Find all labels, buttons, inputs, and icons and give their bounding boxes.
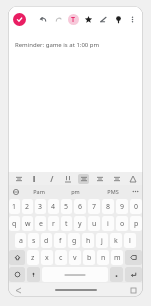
button[interactable]: 1 [9, 199, 20, 214]
button[interactable]: o [116, 216, 128, 231]
button[interactable]: Pin [113, 14, 124, 25]
staticText: 1 [12, 202, 17, 212]
staticText: s [32, 236, 36, 246]
button[interactable]: n [97, 250, 109, 265]
button[interactable]: Shift [9, 250, 25, 265]
staticText: 6 [78, 202, 83, 212]
button[interactable]: Format 7 [127, 174, 138, 184]
button[interactable]: d [41, 233, 52, 248]
button[interactable]: Format 2 [46, 174, 57, 184]
staticText: 5 [64, 202, 69, 212]
button[interactable]: Keyboard settings [11, 187, 20, 196]
button[interactable]: c [55, 250, 67, 265]
button[interactable]: 4 [48, 199, 59, 214]
button[interactable]: Format 0 [13, 174, 24, 184]
staticText: 3 [38, 202, 43, 212]
button[interactable]: b [83, 250, 95, 265]
button[interactable]: a [15, 233, 26, 248]
button[interactable]: 2 [22, 199, 33, 214]
button[interactable]: 6 [74, 199, 86, 214]
staticText: n [101, 253, 106, 263]
staticText: u [92, 219, 97, 229]
staticText: 0 [134, 202, 139, 212]
staticText: 7 [92, 202, 97, 212]
button[interactable]: l [124, 233, 136, 248]
staticText: k [114, 236, 118, 246]
button[interactable]: Text format [68, 14, 79, 25]
button[interactable]: Period [110, 267, 123, 282]
button[interactable]: Back [15, 287, 22, 294]
staticText: d [44, 236, 49, 246]
button[interactable]: v [69, 250, 81, 265]
button[interactable]: h [82, 233, 94, 248]
staticText: v [73, 253, 77, 263]
button[interactable]: Star [83, 14, 94, 25]
button[interactable]: Format 5 [94, 174, 105, 184]
button[interactable]: j [96, 233, 108, 248]
button[interactable]: Format 1 [29, 174, 40, 184]
button[interactable]: Format 4 [78, 174, 89, 184]
button[interactable]: Emoji [9, 267, 25, 282]
button[interactable]: y [74, 216, 86, 231]
button[interactable]: pm [57, 185, 94, 198]
button[interactable]: 5 [61, 199, 72, 214]
button[interactable]: t [61, 216, 72, 231]
button[interactable]: s [28, 233, 39, 248]
button[interactable]: More options [127, 14, 138, 25]
staticText: r [52, 219, 55, 229]
button[interactable]: q [9, 216, 20, 231]
button[interactable]: Backspace [125, 250, 142, 265]
button[interactable]: u [88, 216, 100, 231]
staticText: h [86, 236, 91, 246]
staticText: y [78, 219, 82, 229]
button[interactable]: PMS [94, 185, 131, 198]
button[interactable]: 7 [88, 199, 100, 214]
staticText: b [87, 253, 92, 263]
button[interactable]: Undo [38, 14, 49, 25]
button[interactable]: Voice input [27, 267, 40, 282]
staticText: T [71, 15, 76, 25]
button[interactable]: i [102, 216, 114, 231]
button[interactable]: 9 [116, 199, 128, 214]
button[interactable]: Space [42, 267, 108, 282]
button[interactable]: Recents [130, 287, 136, 293]
button[interactable]: z [27, 250, 39, 265]
button[interactable]: e [35, 216, 46, 231]
button[interactable]: w [22, 216, 33, 231]
staticText: j [101, 236, 103, 246]
staticText: Pam [33, 188, 45, 195]
button[interactable]: x [41, 250, 53, 265]
staticText: 4 [51, 202, 56, 212]
staticText: o [120, 219, 125, 229]
staticText: f [59, 236, 62, 246]
button[interactable]: m [111, 250, 123, 265]
button[interactable]: r [48, 216, 59, 231]
staticText: m [114, 253, 121, 263]
button[interactable]: g [68, 233, 80, 248]
button[interactable]: Draw [98, 14, 109, 25]
button[interactable]: f [54, 233, 66, 248]
staticText: z [31, 253, 35, 263]
button[interactable]: 8 [102, 199, 114, 214]
staticText: w [25, 219, 31, 229]
staticText: Reminder: game is at 1:00 pm [15, 41, 100, 49]
button[interactable]: p [130, 216, 142, 231]
staticText: p [134, 219, 139, 229]
staticText: 9 [120, 202, 125, 212]
staticText: q [12, 219, 17, 229]
button[interactable]: Enter [125, 267, 142, 282]
button[interactable]: Pam [20, 185, 57, 198]
staticText: a [19, 236, 23, 246]
button[interactable]: Format 3 [62, 174, 73, 184]
button[interactable]: More suggestions [131, 187, 140, 196]
button[interactable]: k [110, 233, 122, 248]
button[interactable]: 3 [35, 199, 46, 214]
button[interactable]: 0 [130, 199, 142, 214]
button[interactable]: Done [13, 13, 26, 26]
button[interactable]: Home [55, 289, 97, 291]
staticText: e [39, 219, 43, 229]
staticText: c [59, 253, 63, 263]
button[interactable]: Format 6 [111, 174, 122, 184]
button[interactable]: Redo [53, 14, 64, 25]
staticText: pm [71, 188, 80, 195]
